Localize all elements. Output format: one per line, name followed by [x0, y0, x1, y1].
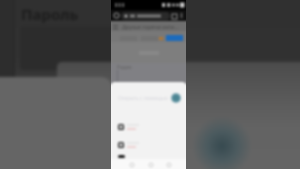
button[interactable] [111, 139, 186, 151]
button[interactable]: Recent apps [164, 160, 173, 169]
button[interactable]: More [118, 155, 125, 158]
button[interactable]: Home [112, 11, 121, 20]
button[interactable] [121, 12, 170, 20]
button[interactable] [111, 121, 186, 133]
staticText: Друзья горячи акти… [122, 23, 179, 30]
button[interactable]: Home [146, 160, 155, 169]
staticText: Пароль [21, 4, 79, 24]
button[interactable] [166, 35, 183, 41]
button[interactable]: Back [127, 160, 136, 169]
staticText: Радио [117, 64, 132, 71]
button[interactable]: More options [178, 12, 185, 19]
button[interactable]: Tabs [170, 12, 178, 20]
